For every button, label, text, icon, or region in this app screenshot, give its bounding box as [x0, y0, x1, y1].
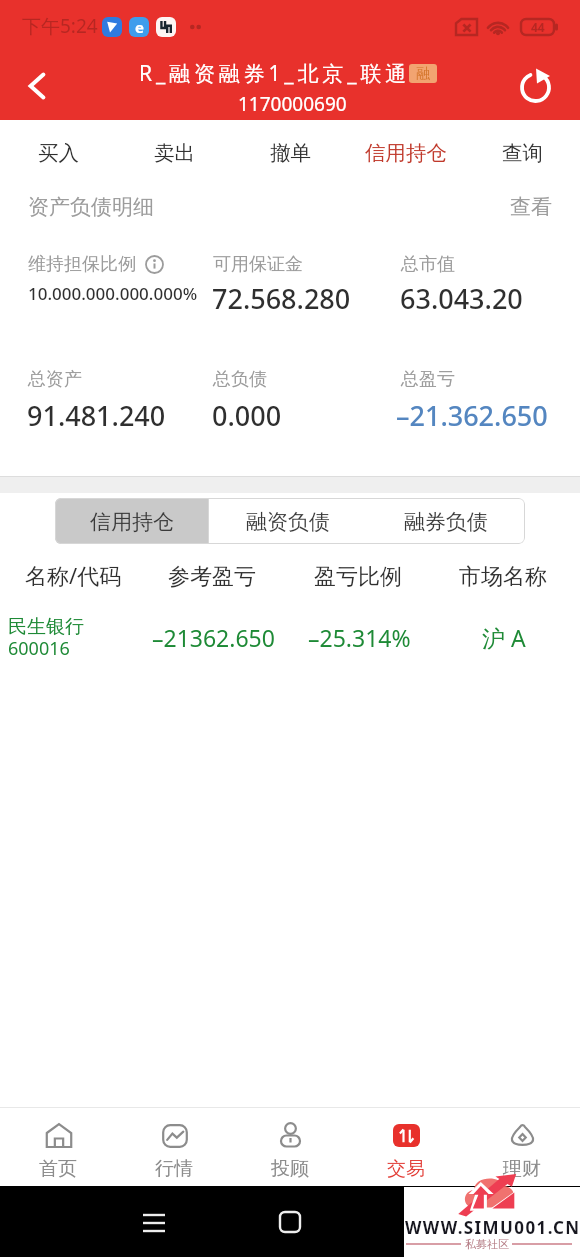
- button[interactable]: Refresh: [506, 57, 564, 115]
- staticText: 融资负债: [246, 509, 330, 535]
- button[interactable]: 买入: [0, 120, 116, 185]
- staticText: 理财: [503, 1157, 541, 1181]
- staticText: 资产负债明细: [28, 194, 154, 220]
- staticText: R_融资融券1_北京_联通: [139, 59, 411, 88]
- staticText: 市场名称: [459, 563, 547, 591]
- button[interactable]: 卖出: [116, 120, 232, 185]
- button[interactable]: 信用持仓: [348, 120, 464, 185]
- button[interactable]: 首页: [0, 1108, 116, 1186]
- staticText: 名称/代码: [25, 560, 122, 590]
- staticText: –21362.650: [152, 622, 275, 653]
- staticText: e: [135, 17, 144, 37]
- staticText: 总市值: [401, 253, 455, 276]
- staticText: 91.481.240: [27, 397, 166, 434]
- staticText: 投顾: [271, 1157, 309, 1181]
- staticText: 交易: [387, 1157, 425, 1181]
- button[interactable]: 行情: [116, 1108, 232, 1186]
- staticText: 信用持仓: [365, 140, 447, 166]
- button[interactable]: 融资负债: [209, 498, 367, 544]
- button[interactable]: 理财: [464, 1108, 580, 1186]
- staticText: 撤单: [270, 140, 311, 166]
- staticText: 总资产: [28, 368, 82, 391]
- staticText: 下午5:24: [22, 13, 98, 39]
- staticText: 600016: [8, 636, 70, 661]
- staticText: 10.000.000.000.000%: [28, 282, 198, 305]
- staticText: 44: [531, 19, 545, 35]
- staticText: 查看: [510, 194, 552, 220]
- staticText: –25.314%: [308, 622, 411, 653]
- staticText: 行情: [155, 1157, 193, 1181]
- staticText: –21.362.650: [396, 397, 548, 434]
- staticText: 0.000: [212, 397, 282, 434]
- staticText: 查询: [502, 140, 543, 166]
- staticText: 盈亏比例: [314, 563, 402, 591]
- button[interactable]: 撤单: [232, 120, 348, 185]
- button[interactable]: Back: [8, 57, 66, 115]
- staticText: 买入: [38, 140, 79, 166]
- staticText: 沪 A: [482, 622, 526, 653]
- button[interactable]: 信用持仓: [55, 498, 208, 544]
- staticText: 1170000690: [238, 91, 347, 117]
- staticText: 总盈亏: [401, 368, 455, 391]
- staticText: 融: [416, 65, 430, 83]
- staticText: 私募社区: [465, 1237, 509, 1251]
- button[interactable]: 民生银行: [0, 610, 580, 662]
- staticText: 维持担保比例: [28, 253, 136, 276]
- staticText: 首页: [39, 1157, 77, 1181]
- staticText: 信用持仓: [90, 509, 174, 535]
- button[interactable]: 交易: [348, 1108, 464, 1186]
- staticText: 融券负债: [404, 509, 488, 535]
- staticText: 民生银行: [8, 615, 84, 639]
- button[interactable]: 融券负债: [367, 498, 525, 544]
- staticText: 72.568.280: [212, 280, 351, 317]
- staticText: 63.043.20: [400, 280, 523, 317]
- staticText: WWW.SIMU001.CN: [405, 1216, 580, 1239]
- staticText: 可用保证金: [213, 253, 303, 276]
- staticText: 参考盈亏: [168, 563, 256, 591]
- staticText: 卖出: [154, 140, 195, 166]
- staticText: 总负债: [213, 368, 267, 391]
- button[interactable]: 投顾: [232, 1108, 348, 1186]
- button[interactable]: 查询: [464, 120, 580, 185]
- button[interactable]: 资产负债明细: [0, 185, 580, 233]
